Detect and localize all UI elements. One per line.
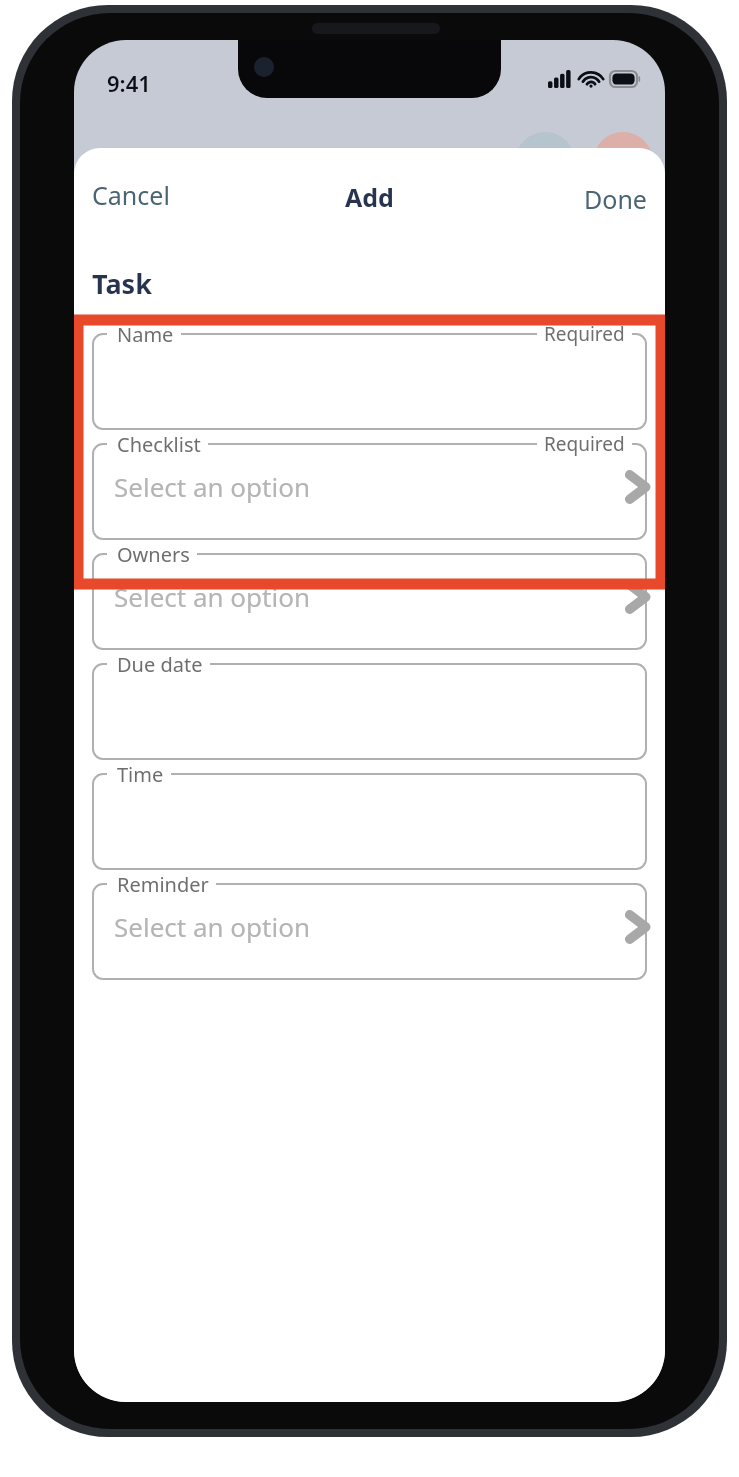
staticText: Select an option — [114, 579, 310, 614]
button[interactable] — [92, 774, 647, 870]
staticText: Select an option — [114, 909, 310, 944]
staticText: 9:41 — [107, 68, 151, 98]
staticText: Cancel — [92, 178, 170, 212]
staticText: Done — [584, 182, 647, 216]
other: Open Checklist options — [625, 470, 651, 504]
staticText: Task — [92, 265, 152, 302]
button[interactable]: Select an option — [92, 444, 647, 540]
button[interactable] — [92, 664, 647, 760]
staticText: Select an option — [114, 469, 310, 504]
staticText: Add — [345, 180, 394, 214]
button[interactable]: Cancel — [82, 170, 180, 220]
button[interactable] — [92, 334, 647, 430]
button[interactable]: Done — [574, 174, 657, 224]
other: Open Owners options — [625, 580, 651, 614]
button[interactable]: Select an option — [92, 554, 647, 650]
button[interactable]: Select an option — [92, 884, 647, 980]
other: Open Reminder options — [625, 910, 651, 944]
